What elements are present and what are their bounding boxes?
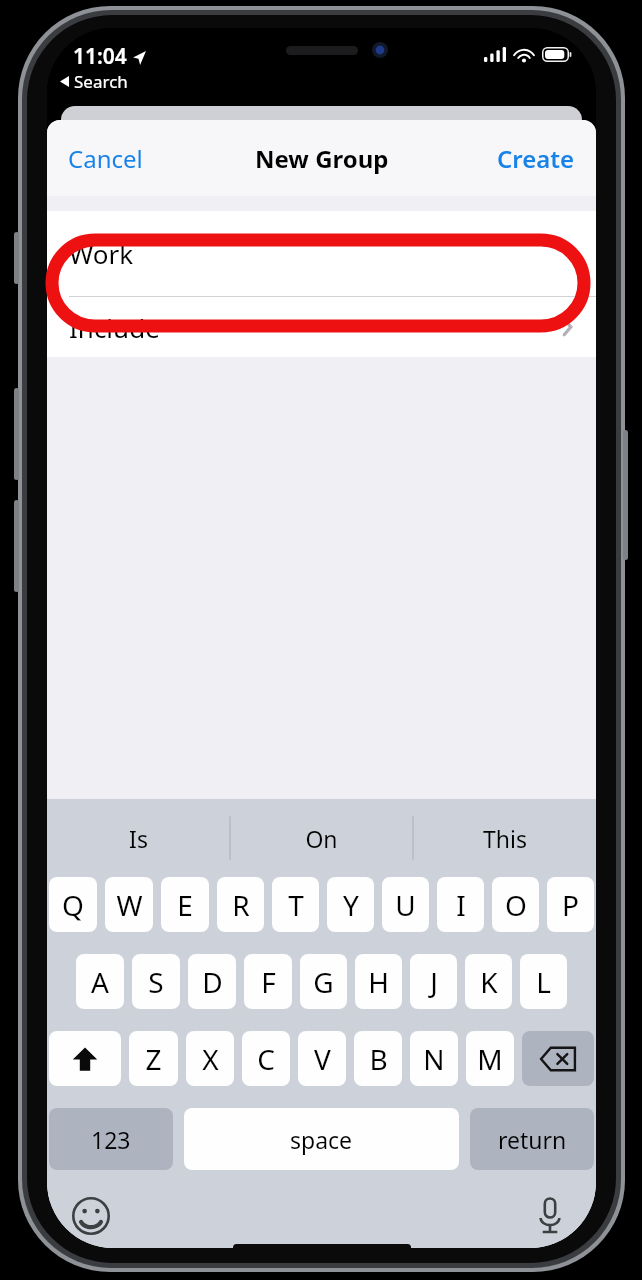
staticText: O: [505, 886, 527, 924]
button[interactable]: X: [186, 1031, 234, 1086]
staticText: T: [288, 886, 304, 924]
button[interactable]: Delete: [522, 1031, 594, 1086]
staticText: U: [395, 886, 416, 924]
staticText: Cancel: [68, 142, 143, 175]
staticText: R: [232, 886, 250, 924]
staticText: This: [483, 823, 527, 854]
button[interactable]: M: [466, 1031, 514, 1086]
button[interactable]: J: [410, 954, 457, 1009]
staticText: Is: [129, 823, 148, 854]
staticText: D: [202, 963, 223, 1001]
button[interactable]: Y: [327, 877, 374, 932]
staticText: Include: [69, 310, 160, 345]
button[interactable]: Work: [47, 211, 596, 296]
button[interactable]: Is: [47, 799, 230, 877]
staticText: E: [177, 886, 193, 924]
button[interactable]: A: [76, 954, 124, 1009]
button[interactable]: H: [355, 954, 402, 1009]
staticText: C: [257, 1040, 275, 1078]
staticText: Work: [69, 236, 134, 271]
button[interactable]: P: [547, 877, 594, 932]
staticText: J: [430, 963, 438, 1001]
button[interactable]: W: [105, 877, 153, 932]
staticText: W: [116, 886, 143, 924]
staticText: B: [369, 1040, 388, 1078]
button[interactable]: Cancel: [47, 128, 164, 189]
button[interactable]: This: [413, 799, 596, 877]
staticText: Search: [74, 70, 128, 93]
button[interactable]: Include: [47, 297, 596, 357]
staticText: space: [290, 1124, 353, 1155]
button[interactable]: return: [470, 1108, 594, 1170]
staticText: S: [148, 963, 164, 1001]
button[interactable]: D: [188, 954, 236, 1009]
staticText: G: [313, 963, 334, 1001]
staticText: M: [477, 1040, 503, 1078]
staticText: X: [202, 1040, 219, 1078]
button[interactable]: On: [230, 799, 413, 877]
staticText: L: [536, 963, 551, 1001]
staticText: I: [456, 886, 466, 924]
button[interactable]: Z: [129, 1031, 178, 1086]
staticText: F: [261, 963, 276, 1001]
button[interactable]: O: [492, 877, 539, 932]
button[interactable]: Shift: [49, 1031, 121, 1086]
button[interactable]: N: [410, 1031, 458, 1086]
staticText: Create: [497, 142, 575, 175]
staticText: K: [480, 963, 498, 1001]
staticText: New Group: [255, 142, 389, 175]
button[interactable]: V: [298, 1031, 346, 1086]
button[interactable]: space: [184, 1108, 459, 1170]
staticText: return: [498, 1124, 567, 1155]
staticText: N: [423, 1040, 445, 1078]
button[interactable]: F: [244, 954, 292, 1009]
staticText: Z: [145, 1040, 162, 1078]
staticText: A: [91, 963, 109, 1001]
button[interactable]: R: [217, 877, 264, 932]
button[interactable]: G: [300, 954, 347, 1009]
staticText: 123: [91, 1124, 131, 1155]
button[interactable]: L: [520, 954, 567, 1009]
button[interactable]: C: [242, 1031, 290, 1086]
staticText: P: [562, 886, 579, 924]
button[interactable]: E: [161, 877, 209, 932]
button[interactable]: Emoji keyboard: [69, 1194, 113, 1238]
button[interactable]: Create: [476, 128, 596, 189]
staticText: H: [368, 963, 389, 1001]
staticText: Y: [343, 886, 359, 924]
staticText: V: [314, 1040, 331, 1078]
button[interactable]: S: [132, 954, 180, 1009]
button[interactable]: I: [437, 877, 484, 932]
button[interactable]: K: [465, 954, 512, 1009]
staticText: Q: [62, 886, 84, 924]
button[interactable]: Dictation: [528, 1194, 572, 1238]
button[interactable]: U: [382, 877, 429, 932]
staticText: On: [305, 823, 338, 854]
button[interactable]: Q: [49, 877, 97, 932]
button[interactable]: 123: [49, 1108, 173, 1170]
button[interactable]: T: [272, 877, 319, 932]
staticText: 11:04: [73, 42, 127, 71]
button[interactable]: B: [354, 1031, 402, 1086]
